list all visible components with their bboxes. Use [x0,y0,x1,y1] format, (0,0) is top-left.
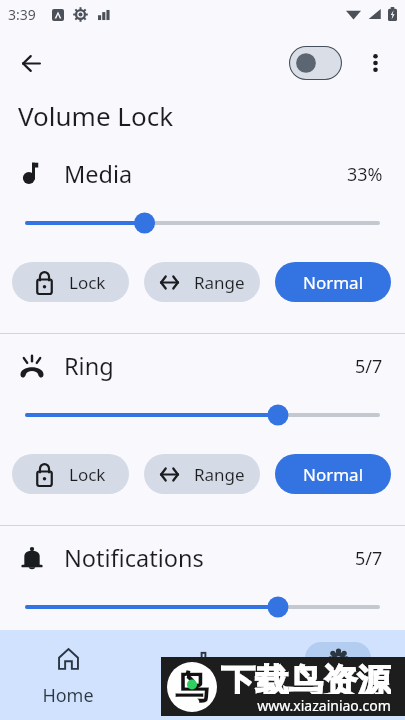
button[interactable]: Lock [12,262,129,302]
button[interactable]: Normal [275,262,391,302]
staticText: 鸟 [175,666,209,709]
staticText: 3:39 [8,5,36,24]
staticText: www.xiazainiao.com [257,696,391,712]
staticText: Ring [64,350,114,382]
staticText: Profiles [171,683,235,708]
staticText: Lock [69,271,106,294]
staticText: Lock [69,463,106,486]
button[interactable]: Back [9,41,53,85]
button[interactable]: Home [0,630,135,720]
staticText: Media [64,158,133,190]
staticText: Home [42,683,94,708]
staticText: Settings [303,683,372,708]
staticText: Range [194,463,245,486]
button[interactable]: More options [355,43,395,83]
staticText: 5/7 [355,546,383,571]
staticText: Range [194,271,245,294]
staticText: 5/7 [355,354,383,379]
button[interactable]: Range [144,262,260,302]
staticText: Normal [303,271,364,294]
button[interactable]: Normal [275,454,391,494]
staticText: Normal [303,463,364,486]
button[interactable]: Range [144,454,260,494]
staticText: Volume Lock [18,98,174,133]
staticText: 33% [347,162,383,187]
staticText: Notifications [64,542,204,574]
button[interactable]: Enable volume lock [289,46,342,80]
button[interactable]: Lock [12,454,129,494]
button[interactable]: Profiles [135,630,270,720]
staticText: 下载鸟资源 [221,660,391,694]
button[interactable]: Settings [270,630,405,720]
